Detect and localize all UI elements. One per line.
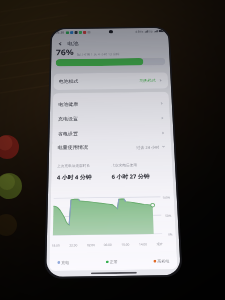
staticText: 18:00 [52,244,60,248]
staticText: 0% [168,233,173,236]
staticText: 08:36 [55,30,65,34]
button[interactable]: 电池健康 [53,96,169,112]
staticText: 4.5K/s [135,30,144,33]
staticText: 均衡模式 [139,78,156,83]
staticText: 50% [165,214,172,218]
staticText: 预计可用 1 天 4 小时 13 分钟 [77,52,119,56]
staticText: 过去 24 小时 [136,144,159,150]
staticText: 6 小时 27 分钟 [111,172,150,180]
button[interactable]: 电池模式 [53,72,168,90]
button[interactable]: 电量使用情况 [52,138,172,156]
staticText: 高耗电 [157,259,169,264]
staticText: 上次充电后使用 [111,163,138,167]
staticText: 省电设置 [58,131,78,137]
staticText: 充电 [61,260,69,265]
staticText: 06:00 [104,243,113,247]
button[interactable]: 省电设置 [52,125,171,142]
staticText: 电池健康 [58,102,78,107]
staticText: 14:00 [139,242,148,246]
staticText: 02:00 [87,243,96,247]
staticText: 现在 [157,242,164,246]
staticText: 4 小时 4 分钟 [57,173,92,180]
staticText: 正常 [110,259,118,264]
staticText: 电量使用情况 [57,144,88,151]
staticText: 电池模式 [59,79,78,84]
staticText: 充电设置 [58,116,78,122]
staticText: 上次充电后亮屏时长 [57,163,91,168]
button[interactable]: Back [56,40,64,47]
button[interactable]: 充电设置 [52,110,170,126]
staticText: 100% [162,196,171,199]
staticText: 76% [56,47,74,57]
staticText: 5G [149,30,153,33]
staticText: 10:00 [121,243,130,247]
staticText: 电池 [67,41,78,47]
staticText: 22:00 [69,243,78,247]
